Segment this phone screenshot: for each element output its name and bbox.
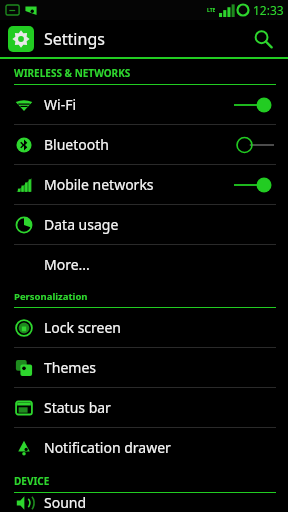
button[interactable]: Mobile networks	[0, 165, 288, 204]
staticText: Personalization	[14, 290, 88, 303]
button[interactable]: More...	[0, 245, 288, 284]
staticText: Data usage	[44, 215, 119, 234]
staticText: Themes	[44, 358, 97, 377]
button[interactable]: Bluetooth	[0, 125, 288, 164]
staticText: 12:33	[253, 2, 284, 18]
staticText: Sound	[44, 493, 87, 512]
staticText: LTE	[207, 7, 216, 14]
staticText: Notification drawer	[44, 438, 171, 457]
staticText: Bluetooth	[44, 135, 109, 154]
button[interactable]: Settings app icon	[8, 26, 34, 52]
staticText: DEVICE	[14, 474, 50, 488]
button[interactable]: Notification drawer	[0, 428, 288, 467]
button[interactable]: Sound	[0, 493, 288, 512]
staticText: WIRELESS & NETWORKS	[14, 66, 131, 80]
button[interactable]: Lock screen	[0, 308, 288, 347]
staticText: Mobile networks	[44, 175, 154, 194]
button[interactable]: Status bar	[0, 388, 288, 427]
button[interactable]: Wi-Fi	[0, 85, 288, 124]
staticText: Lock screen	[44, 318, 122, 337]
button[interactable]: Search	[246, 22, 280, 56]
button[interactable]: Themes	[0, 348, 288, 387]
staticText: Wi-Fi	[44, 95, 77, 114]
staticText: Status bar	[44, 398, 111, 417]
button[interactable]: Data usage	[0, 205, 288, 244]
staticText: Settings	[44, 28, 105, 50]
staticText: More...	[44, 255, 90, 274]
